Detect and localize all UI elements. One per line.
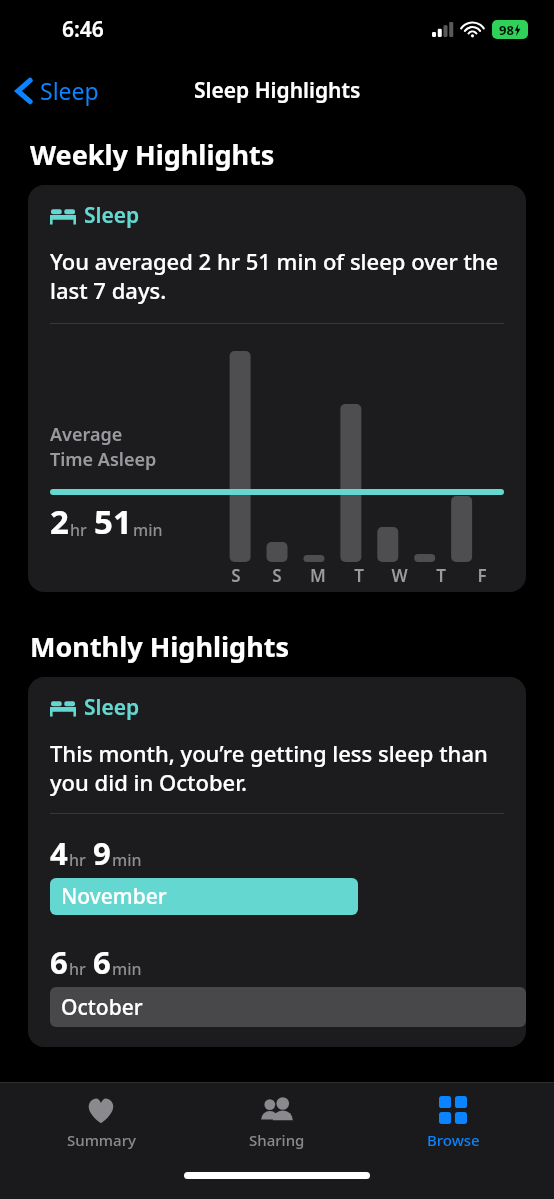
staticText: Average xyxy=(50,422,123,447)
button[interactable]: Summary xyxy=(26,1091,176,1156)
other: Summary xyxy=(86,1097,116,1124)
staticText: F xyxy=(477,564,487,587)
staticText: Sleep Highlights xyxy=(194,76,361,105)
staticText: 98 xyxy=(499,21,514,39)
staticText: 6:46 xyxy=(62,15,104,44)
staticText: min xyxy=(112,958,142,980)
staticText: 6 xyxy=(93,941,111,983)
staticText: Browse xyxy=(427,1130,480,1150)
staticText: 9 xyxy=(93,832,111,874)
staticText: min xyxy=(133,519,163,541)
staticText: M xyxy=(310,564,326,587)
button[interactable]: Sharing xyxy=(202,1091,352,1156)
staticText: T xyxy=(354,564,364,587)
staticText: hr xyxy=(69,849,86,871)
staticText: 51 xyxy=(94,499,132,544)
staticText: S xyxy=(231,564,241,587)
staticText: Sleep xyxy=(84,693,140,722)
staticText: min xyxy=(112,849,142,871)
staticText: This month, you’re getting less sleep th… xyxy=(50,738,504,797)
button[interactable]: Sleep xyxy=(28,677,526,1047)
button[interactable]: Browse xyxy=(378,1090,528,1156)
staticText: hr xyxy=(70,519,87,541)
button[interactable]: Sleep xyxy=(28,185,526,592)
other: Sharing xyxy=(259,1097,295,1124)
staticText: Weekly Highlights xyxy=(30,136,275,173)
staticText: You averaged 2 hr 51 min of sleep over t… xyxy=(50,246,504,305)
button[interactable]: Sleep xyxy=(10,69,105,112)
staticText: 2 xyxy=(50,499,69,544)
staticText: November xyxy=(61,882,167,911)
staticText: Time Asleep xyxy=(50,447,157,472)
staticText: S xyxy=(272,564,282,587)
staticText: Sleep xyxy=(40,75,99,106)
staticText: T xyxy=(436,564,446,587)
staticText: Monthly Highlights xyxy=(30,628,289,665)
staticText: Sleep xyxy=(84,201,140,230)
staticText: Summary xyxy=(67,1130,136,1150)
staticText: W xyxy=(391,564,408,587)
other: Browse xyxy=(439,1096,467,1124)
staticText: Sharing xyxy=(249,1130,305,1150)
staticText: 6 xyxy=(50,941,68,983)
staticText: 4 xyxy=(50,832,68,874)
staticText: October xyxy=(61,993,143,1022)
staticText: hr xyxy=(69,958,86,980)
